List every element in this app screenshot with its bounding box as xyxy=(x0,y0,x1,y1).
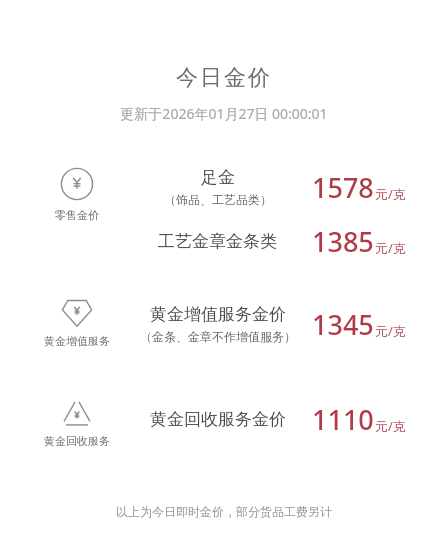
staticText: 1345 xyxy=(312,306,374,343)
staticText: 1385 xyxy=(312,223,374,260)
staticText: 元/克 xyxy=(375,185,406,203)
button[interactable]: 零售金价 xyxy=(44,167,110,222)
button[interactable]: 黄金回收服务 xyxy=(40,395,114,448)
staticText: （饰品、工艺品类） xyxy=(164,192,272,207)
staticText: 元/克 xyxy=(375,322,406,340)
staticText: 黄金增值服务金价 xyxy=(150,304,286,325)
staticText: （金条、金章不作增值服务） xyxy=(140,329,296,344)
button[interactable]: 黄金增值服务金价 xyxy=(0,295,448,353)
staticText: 元/克 xyxy=(375,239,406,257)
button[interactable]: 黄金增值服务 xyxy=(40,295,114,348)
button[interactable]: 黄金回收服务金价 xyxy=(0,395,448,443)
staticText: 黄金回收服务 xyxy=(44,434,110,448)
staticText: 更新于2026年01月27日 00:00:01 xyxy=(0,104,448,123)
button[interactable]: 足金 xyxy=(0,159,448,215)
staticText: 1110 xyxy=(312,401,374,438)
staticText: 零售金价 xyxy=(55,208,99,222)
staticText: 足金 xyxy=(201,167,235,188)
staticText: 黄金增值服务 xyxy=(44,334,110,348)
staticText: 工艺金章金条类 xyxy=(158,231,277,252)
staticText: 以上为今日即时金价，部分货品工费另计 xyxy=(0,504,448,519)
staticText: 今日金价 xyxy=(0,64,448,92)
button[interactable]: 工艺金章金条类 xyxy=(0,215,448,267)
staticText: 黄金回收服务金价 xyxy=(150,409,286,430)
staticText: 1578 xyxy=(312,169,374,206)
staticText: 元/克 xyxy=(375,417,406,435)
